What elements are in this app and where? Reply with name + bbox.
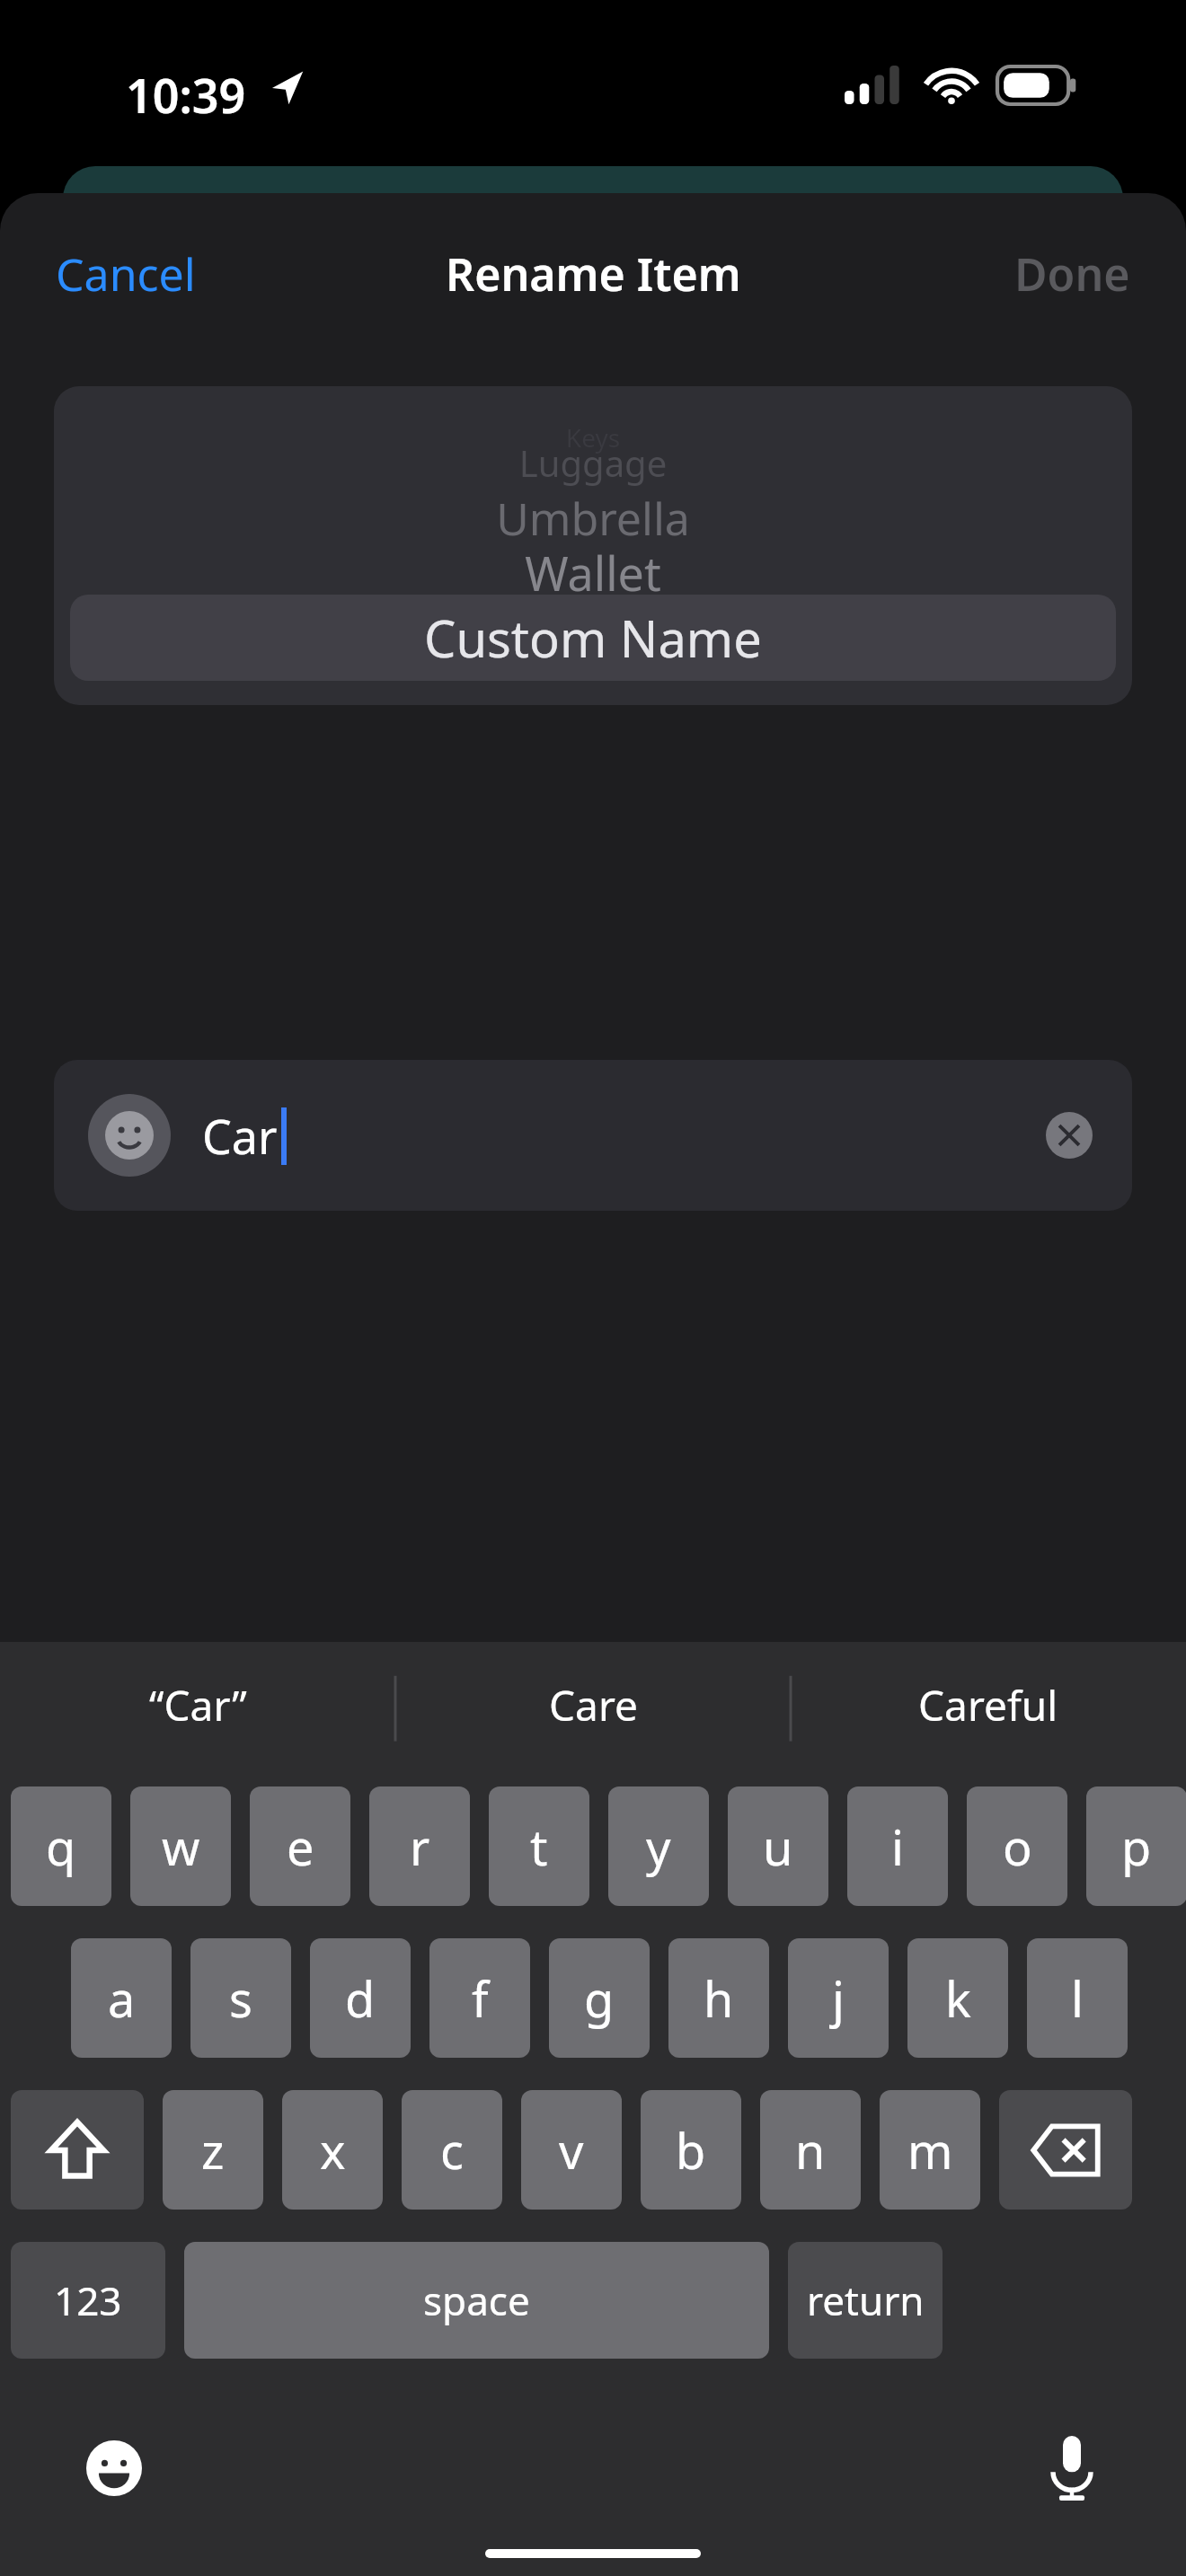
button[interactable]: Clear text — [1044, 1110, 1094, 1160]
staticText: h — [704, 1965, 734, 2032]
staticText: a — [108, 1965, 136, 2032]
button[interactable]: i — [847, 1786, 948, 1906]
button[interactable]: y — [608, 1786, 709, 1906]
staticText: t — [530, 1813, 548, 1880]
button[interactable]: Cancel — [40, 231, 212, 317]
staticText: Custom Name — [424, 604, 762, 672]
button[interactable]: t — [489, 1786, 589, 1906]
button[interactable]: a — [71, 1938, 172, 2058]
button[interactable]: h — [668, 1938, 769, 2058]
button[interactable]: w — [130, 1786, 231, 1906]
button[interactable]: “Car” — [0, 1642, 395, 1768]
button[interactable]: x — [282, 2090, 383, 2210]
button[interactable]: Custom Name — [70, 595, 1116, 681]
staticText: u — [763, 1813, 793, 1880]
button[interactable]: return — [788, 2242, 943, 2359]
staticText: “Car” — [149, 1677, 247, 1734]
staticText: p — [1121, 1813, 1152, 1880]
staticText: Wallet — [54, 541, 1132, 604]
button[interactable]: f — [429, 1938, 530, 2058]
button[interactable]: Shift — [11, 2090, 144, 2210]
staticText: 123 — [54, 2273, 122, 2327]
button[interactable]: q — [11, 1786, 111, 1906]
button[interactable]: Careful — [791, 1642, 1186, 1768]
staticText: 10:39 — [126, 63, 246, 127]
button[interactable]: 123 — [11, 2242, 165, 2359]
button[interactable]: n — [760, 2090, 861, 2210]
button[interactable]: b — [641, 2090, 741, 2210]
button[interactable]: j — [788, 1938, 889, 2058]
button[interactable]: Choose emoji — [88, 1094, 171, 1177]
staticText: v — [559, 2117, 584, 2183]
button[interactable]: Care — [395, 1642, 791, 1768]
staticText: z — [201, 2117, 225, 2183]
staticText: r — [410, 1813, 430, 1880]
staticText: Umbrella — [54, 488, 1132, 549]
button[interactable]: Dictate — [1022, 2419, 1121, 2518]
staticText: m — [907, 2117, 953, 2183]
button[interactable]: l — [1027, 1938, 1128, 2058]
staticText: k — [945, 1965, 971, 2032]
staticText: g — [584, 1965, 615, 2032]
staticText: d — [345, 1965, 376, 2032]
staticText: n — [795, 2117, 826, 2183]
button[interactable]: d — [310, 1938, 411, 2058]
staticText: e — [287, 1813, 314, 1880]
staticText: c — [440, 2117, 464, 2183]
staticText: return — [807, 2273, 925, 2327]
staticText: x — [320, 2117, 346, 2183]
staticText: l — [1071, 1965, 1084, 2032]
staticText: Luggage — [54, 438, 1132, 487]
staticText: Done — [1014, 243, 1130, 304]
button[interactable]: Choose emoji — [54, 1060, 1132, 1211]
button[interactable]: v — [521, 2090, 622, 2210]
button[interactable]: c — [402, 2090, 502, 2210]
button[interactable]: z — [163, 2090, 263, 2210]
button[interactable]: g — [549, 1938, 650, 2058]
staticText: o — [1003, 1813, 1032, 1880]
button[interactable]: m — [880, 2090, 980, 2210]
staticText: Cancel — [56, 243, 196, 304]
staticText: f — [472, 1965, 489, 2032]
staticText: Care — [549, 1677, 638, 1734]
button[interactable]: e — [250, 1786, 350, 1906]
staticText: Rename Item — [446, 243, 741, 304]
button[interactable]: r — [369, 1786, 470, 1906]
staticText: w — [162, 1813, 200, 1880]
staticText: j — [832, 1965, 845, 2032]
staticText: Car — [202, 1104, 278, 1168]
staticText: q — [46, 1813, 76, 1880]
staticText: b — [676, 2117, 706, 2183]
button[interactable]: Emoji keyboard — [65, 2419, 164, 2518]
staticText: space — [423, 2273, 530, 2327]
button[interactable]: k — [907, 1938, 1008, 2058]
staticText: i — [891, 1813, 904, 1880]
staticText: Careful — [918, 1677, 1058, 1734]
staticText: y — [646, 1813, 671, 1880]
button[interactable]: space — [184, 2242, 769, 2359]
staticText: s — [229, 1965, 252, 2032]
button[interactable]: u — [728, 1786, 828, 1906]
button[interactable]: Backspace — [999, 2090, 1132, 2210]
button[interactable]: o — [967, 1786, 1067, 1906]
button[interactable]: p — [1086, 1786, 1186, 1906]
button[interactable]: Done — [998, 231, 1146, 317]
button[interactable]: s — [190, 1938, 291, 2058]
